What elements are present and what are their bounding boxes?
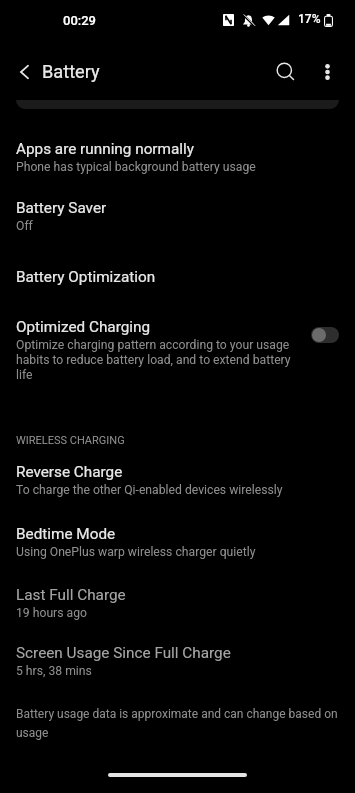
staticText: Optimize charging pattern according to y… <box>16 338 296 382</box>
staticText: Bedtime Mode <box>16 525 116 543</box>
staticText: To charge the other Qi-enabled devices w… <box>16 483 283 497</box>
button[interactable]: More options <box>307 52 347 92</box>
button[interactable]: Bedtime Mode <box>0 525 355 559</box>
button[interactable]: Battery Saver <box>0 199 355 233</box>
staticText: Battery Optimization <box>16 268 156 286</box>
staticText: Battery <box>42 61 100 82</box>
button[interactable]: Back <box>2 50 46 94</box>
staticText: Apps are running normally <box>16 140 194 158</box>
button[interactable]: Screen Usage Since Full Charge <box>0 644 355 678</box>
button[interactable]: Optimized Charging toggle <box>311 327 339 343</box>
button[interactable]: Optimized Charging <box>0 318 355 382</box>
staticText: Last Full Charge <box>16 586 126 604</box>
staticText: Phone has typical background battery usa… <box>16 160 256 174</box>
staticText: 19 hours ago <box>16 606 87 620</box>
staticText: Optimized Charging <box>16 318 151 336</box>
button[interactable]: Search <box>263 49 307 93</box>
staticText: Battery usage data is approximate and ca… <box>16 707 341 740</box>
staticText: Battery Saver <box>16 199 107 217</box>
staticText: Screen Usage Since Full Charge <box>16 644 231 662</box>
staticText: WIRELESS CHARGING <box>16 434 125 447</box>
button[interactable]: Last Full Charge <box>0 586 355 620</box>
staticText: 5 hrs, 38 mins <box>16 664 92 678</box>
staticText: Reverse Charge <box>16 463 123 481</box>
button[interactable]: Battery Optimization <box>0 268 355 286</box>
staticText: Off <box>16 219 33 233</box>
staticText: 17% <box>298 12 321 26</box>
button[interactable]: Apps are running normally <box>0 140 355 174</box>
staticText: Using OnePlus warp wireless charger quie… <box>16 545 256 559</box>
staticText: 00:29 <box>63 13 96 28</box>
button[interactable]: Reverse Charge <box>0 463 355 497</box>
